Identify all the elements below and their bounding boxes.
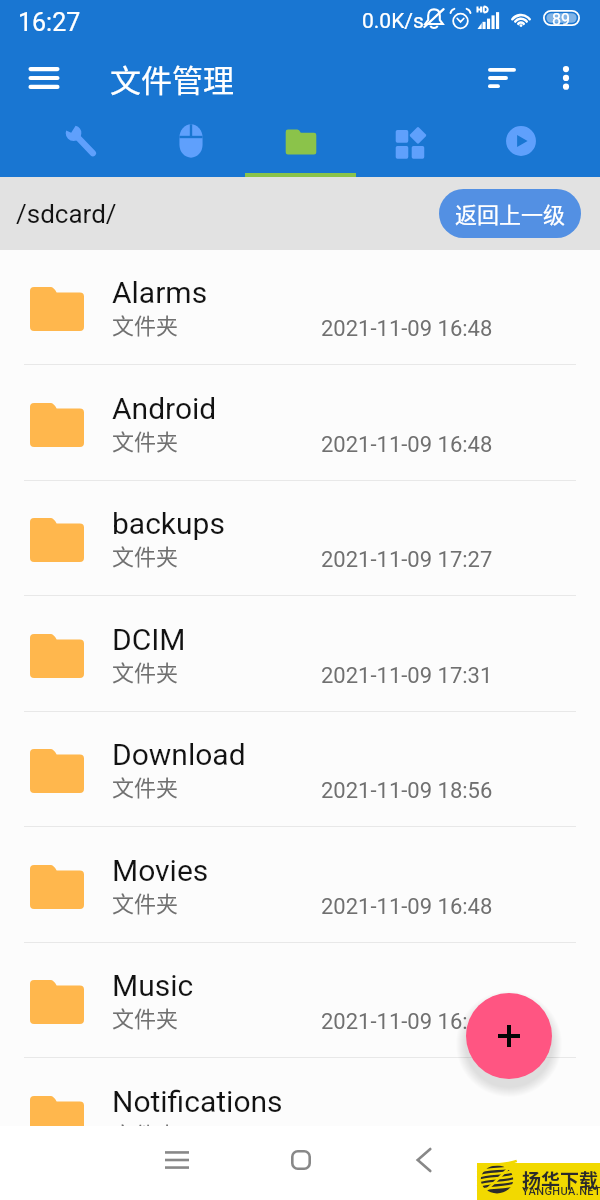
staticText: 文件夹 (112, 886, 179, 918)
staticText: 返回上一级 (455, 197, 566, 229)
staticText: 文件夹 (112, 1001, 179, 1033)
staticText: 2021-11-09 16:48 (321, 894, 493, 920)
staticText: 文件夹 (112, 1117, 179, 1149)
button[interactable]: Apps (356, 111, 466, 177)
button[interactable]: Files (246, 111, 356, 177)
staticText: 文件夹 (112, 424, 179, 456)
staticText: 2021-11-09 17:27 (321, 547, 493, 573)
staticText: 文件管理 (110, 56, 234, 101)
staticText: YANGHUA.NET (522, 1185, 600, 1198)
button[interactable]: DCIM (0, 596, 600, 712)
button[interactable]: Music (0, 942, 600, 1058)
staticText: 2021-11-09 16:48 (321, 1009, 493, 1035)
button[interactable]: More options (537, 49, 595, 107)
staticText: 2021-11-09 16:48 (321, 432, 493, 458)
button[interactable]: Alarms (0, 249, 600, 365)
staticText: 文件夹 (112, 655, 179, 687)
button[interactable]: Back (394, 1130, 454, 1190)
staticText: 16:27 (18, 8, 81, 37)
button[interactable]: Recents (147, 1130, 207, 1190)
button[interactable]: Add (466, 993, 552, 1079)
button[interactable]: backups (0, 480, 600, 596)
button[interactable]: Android (0, 365, 600, 481)
staticText: 2021-11-09 16:48 (321, 1125, 493, 1151)
button[interactable]: Sort (473, 49, 531, 107)
staticText: 2021-11-09 16:48 (321, 316, 493, 342)
staticText: 2021-11-09 17:31 (321, 663, 493, 689)
staticText: Android (112, 391, 217, 426)
staticText: Music (112, 968, 194, 1003)
button[interactable]: Movies (0, 827, 600, 943)
staticText: 文件夹 (112, 539, 179, 571)
button[interactable]: Tools (24, 111, 135, 177)
staticText: Alarms (112, 275, 208, 310)
staticText: 文件夹 (112, 308, 179, 340)
staticText: 2021-11-09 18:56 (321, 778, 493, 804)
staticText: Movies (112, 853, 209, 888)
button[interactable]: Download (0, 711, 600, 827)
staticText: backups (112, 506, 225, 541)
staticText: 0.0K/s (362, 9, 424, 34)
button[interactable]: Remote control (135, 111, 246, 177)
button[interactable]: 返回上一级 (439, 189, 581, 238)
button[interactable]: Home (271, 1130, 331, 1190)
button[interactable]: Menu (15, 49, 73, 107)
button[interactable]: Media (466, 111, 576, 177)
staticText: 扬华下载 (522, 1166, 599, 1194)
button[interactable]: Notifications (0, 1058, 600, 1174)
staticText: 89 (552, 10, 570, 29)
staticText: /sdcard/ (16, 199, 117, 229)
staticText: 文件夹 (112, 770, 179, 802)
staticText: Notifications (112, 1084, 283, 1119)
staticText: Download (112, 737, 246, 772)
staticText: DCIM (112, 622, 186, 657)
